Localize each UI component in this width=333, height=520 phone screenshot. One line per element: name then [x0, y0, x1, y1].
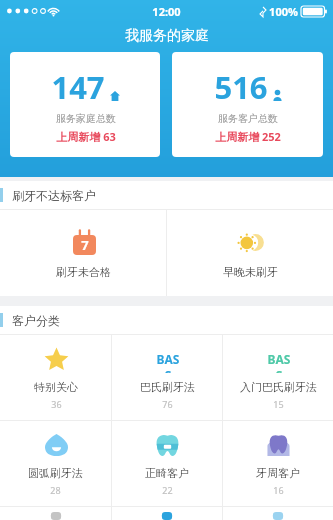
- staticText: 刷牙不达标客户: [12, 188, 96, 203]
- button[interactable]: [0, 507, 111, 520]
- staticText: 28: [50, 484, 61, 496]
- staticText: 客户分类: [12, 313, 60, 328]
- button[interactable]: 巴氏刷牙法: [112, 335, 222, 420]
- staticText: 上周新增 63: [56, 129, 116, 144]
- staticText: 巴氏刷牙法: [140, 380, 195, 394]
- button[interactable]: 圆弧刷牙法: [0, 421, 111, 506]
- staticText: BASS: [154, 351, 182, 373]
- button[interactable]: [112, 507, 222, 520]
- staticText: 服务客户总数: [218, 112, 278, 125]
- staticText: 16: [273, 484, 284, 496]
- staticText: 100%: [269, 4, 298, 19]
- button[interactable]: [223, 507, 333, 520]
- staticText: 特别关心: [34, 380, 78, 394]
- staticText: 牙周客户: [256, 466, 300, 480]
- staticText: 12:00: [152, 4, 181, 19]
- staticText: 15: [273, 398, 284, 410]
- staticText: 22: [162, 484, 173, 496]
- button[interactable]: 早晚未刷牙: [167, 210, 333, 296]
- staticText: 圆弧刷牙法: [28, 466, 83, 480]
- button[interactable]: 147: [10, 52, 160, 157]
- staticText: 服务家庭总数: [56, 112, 116, 125]
- button[interactable]: 特别关心: [0, 335, 111, 420]
- button[interactable]: 入门巴氏刷牙法: [223, 335, 333, 420]
- staticText: 147: [51, 66, 105, 108]
- staticText: BASS: [265, 351, 293, 373]
- button[interactable]: 刷牙未合格: [0, 210, 166, 296]
- staticText: 上周新增 252: [215, 129, 281, 144]
- staticText: 刷牙未合格: [56, 265, 111, 279]
- staticText: 76: [162, 398, 173, 410]
- staticText: 7: [81, 236, 89, 254]
- staticText: 36: [51, 398, 62, 410]
- staticText: 入门巴氏刷牙法: [240, 380, 317, 394]
- staticText: 我服务的家庭: [125, 27, 209, 45]
- staticText: 516: [214, 66, 268, 108]
- button[interactable]: 516: [172, 52, 323, 157]
- staticText: 早晚未刷牙: [223, 265, 278, 279]
- button[interactable]: 正畸客户: [112, 421, 222, 506]
- staticText: 正畸客户: [145, 466, 189, 480]
- button[interactable]: 牙周客户: [223, 421, 333, 506]
